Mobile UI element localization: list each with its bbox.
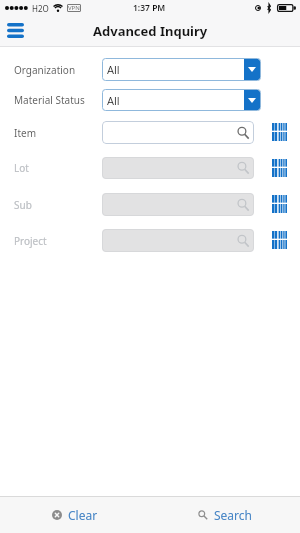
staticText: Project (14, 234, 47, 248)
staticText: Clear (68, 507, 98, 523)
staticText: VPN (68, 4, 80, 12)
button[interactable] (102, 229, 254, 252)
staticText: All (107, 62, 120, 77)
staticText: H2O (32, 3, 49, 14)
staticText: Material Status (14, 93, 85, 107)
staticText: Organization (14, 63, 76, 77)
button[interactable]: Clear (0, 497, 150, 533)
staticText: 1:37 PM (133, 2, 166, 14)
button[interactable]: Scan barcode (272, 195, 287, 213)
staticText: Advanced Inquiry (93, 22, 208, 40)
staticText: All (107, 93, 120, 108)
staticText: Sub (14, 198, 32, 212)
button[interactable] (102, 121, 254, 144)
button[interactable]: Scan barcode (272, 159, 287, 177)
button[interactable]: Scan barcode (272, 231, 287, 249)
button[interactable]: Scan barcode (272, 123, 287, 141)
button[interactable]: Search (150, 497, 300, 533)
button[interactable]: Menu (4, 17, 27, 43)
button[interactable]: All (103, 90, 260, 110)
staticText: Item (14, 126, 36, 140)
staticText: Search (214, 507, 252, 523)
button[interactable] (102, 193, 254, 216)
button[interactable] (102, 157, 254, 179)
button[interactable]: All (103, 59, 260, 80)
staticText: Lot (14, 161, 29, 175)
